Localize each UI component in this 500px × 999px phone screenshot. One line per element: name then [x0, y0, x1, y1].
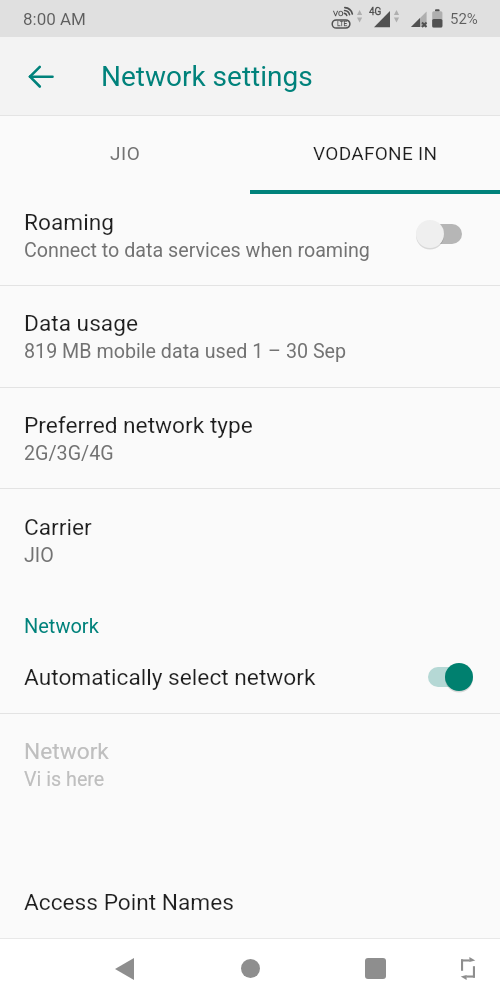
staticText: Network settings: [101, 60, 313, 93]
staticText: Automatically select network: [24, 664, 316, 691]
button[interactable]: Home: [209, 938, 291, 999]
staticText: JIO: [110, 142, 141, 164]
button[interactable]: On: [422, 660, 470, 694]
staticText: 4G: [369, 6, 382, 18]
button[interactable]: Rotate screen: [432, 938, 500, 999]
button[interactable]: Data usage: [0, 286, 500, 387]
button[interactable]: Roaming: [0, 194, 500, 285]
button[interactable]: Back: [13, 50, 65, 102]
button[interactable]: Back: [83, 938, 165, 999]
staticText: Carrier: [24, 514, 92, 541]
button[interactable]: Access Point Names: [0, 875, 500, 925]
staticText: 8:00 AM: [23, 9, 86, 29]
button[interactable]: Carrier: [0, 489, 500, 588]
staticText: Network: [24, 614, 99, 637]
staticText: Vi is here: [24, 768, 105, 791]
staticText: JIO: [24, 544, 54, 567]
staticText: LTE: [337, 20, 348, 28]
button[interactable]: JIO: [0, 116, 250, 190]
button[interactable]: VODAFONE IN: [250, 116, 500, 190]
staticText: Preferred network type: [24, 412, 253, 439]
staticText: VODAFONE IN: [313, 142, 438, 164]
staticText: Data usage: [24, 310, 138, 337]
staticText: Access Point Names: [24, 889, 234, 916]
button[interactable]: Automatically select network: [0, 641, 500, 713]
staticText: Network: [24, 738, 109, 765]
button[interactable]: Off: [422, 217, 470, 251]
button[interactable]: Network: [0, 714, 500, 815]
button[interactable]: Preferred network type: [0, 388, 500, 488]
staticText: Roaming: [24, 209, 114, 236]
staticText: 2G/3G/4G: [24, 442, 114, 465]
staticText: VO: [333, 9, 344, 18]
button[interactable]: Recent apps: [334, 938, 416, 999]
staticText: 52%: [450, 10, 478, 28]
staticText: Connect to data services when roaming: [24, 239, 370, 262]
staticText: 819 MB mobile data used 1 – 30 Sep: [24, 340, 347, 363]
